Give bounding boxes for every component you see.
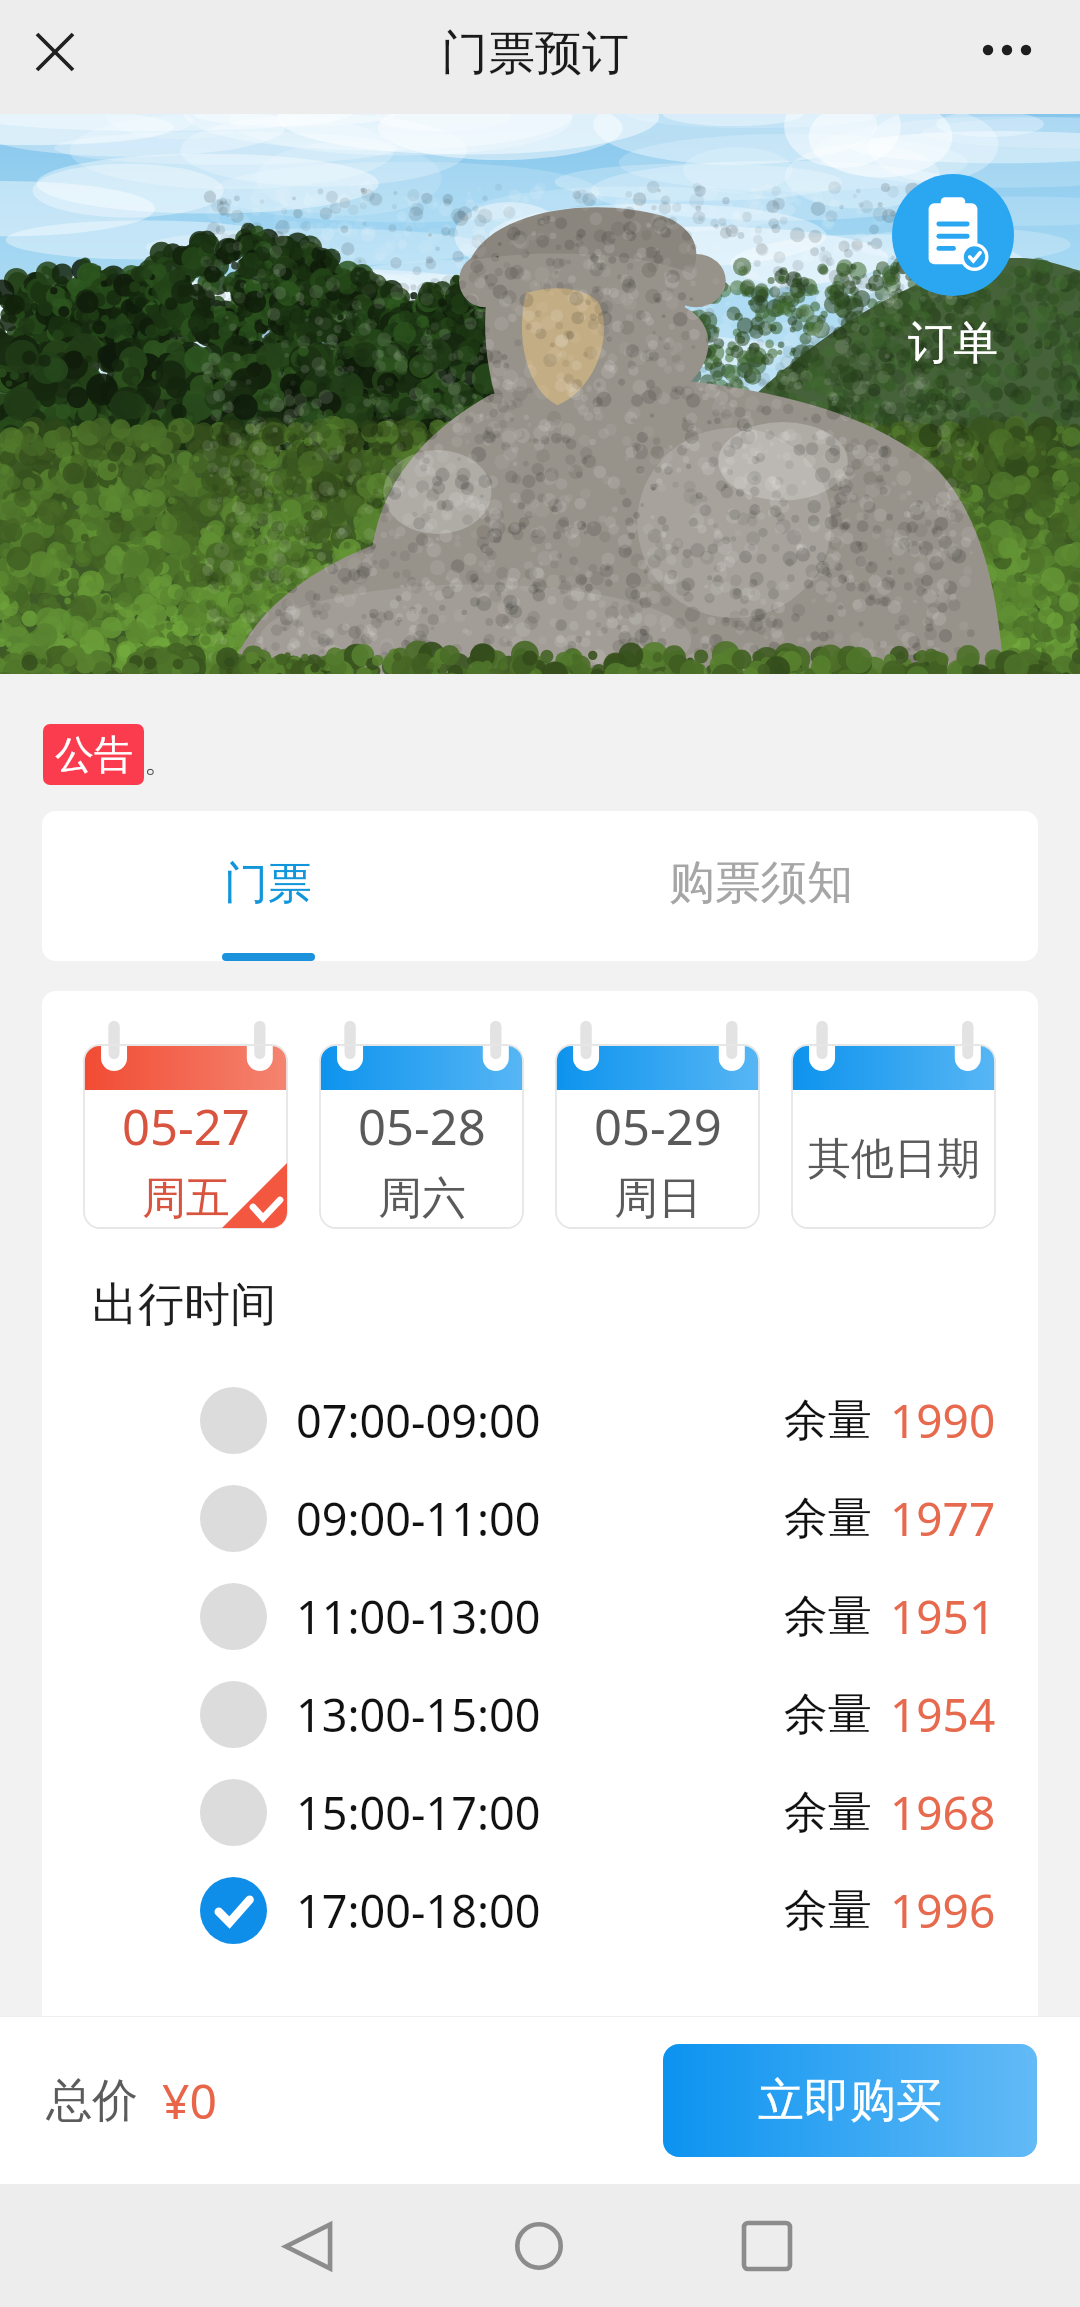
staticText: 周六	[378, 1171, 466, 1226]
staticText: 总价	[46, 2072, 138, 2130]
button[interactable]: Back	[253, 2191, 363, 2301]
staticText: 1951	[890, 1585, 996, 1648]
staticText: 05-28	[358, 1093, 486, 1160]
staticText: ¥0	[162, 2068, 217, 2133]
button[interactable]: 17:00-18:00	[42, 1861, 1038, 1959]
button[interactable]: 05-28	[320, 1021, 523, 1228]
button[interactable]: Home	[484, 2191, 594, 2301]
staticText: 05-29	[594, 1093, 722, 1160]
staticText: 1990	[890, 1389, 996, 1452]
staticText: 余量	[784, 1687, 872, 1742]
staticText: 余量	[784, 1393, 872, 1448]
staticText: 订单	[908, 315, 998, 372]
button[interactable]: 购票须知	[626, 811, 896, 961]
staticText: 门票预订	[441, 24, 629, 83]
staticText: 。	[144, 743, 174, 781]
staticText: 余量	[784, 1491, 872, 1546]
button[interactable]: Close	[20, 17, 90, 87]
button[interactable]: 07:00-09:00	[42, 1371, 1038, 1469]
button[interactable]: 门票	[133, 811, 403, 961]
staticText: 出行时间	[92, 1276, 276, 1334]
staticText: 公告	[55, 730, 133, 779]
button[interactable]: 公告	[43, 724, 144, 785]
button[interactable]: More options	[962, 15, 1052, 85]
button[interactable]: Recents	[712, 2191, 822, 2301]
button[interactable]: 09:00-11:00	[42, 1469, 1038, 1567]
staticText: 1996	[890, 1879, 996, 1942]
staticText: 17:00-18:00	[296, 1880, 541, 1941]
button[interactable]: 其他日期	[792, 1021, 995, 1228]
staticText: 购票须知	[669, 854, 853, 912]
staticText: 周五	[142, 1171, 230, 1226]
staticText: 11:00-13:00	[296, 1586, 541, 1647]
staticText: 1977	[890, 1487, 996, 1550]
staticText: 余量	[784, 1589, 872, 1644]
staticText: 余量	[784, 1883, 872, 1938]
staticText: 09:00-11:00	[296, 1488, 541, 1549]
button[interactable]: 05-27	[84, 1021, 287, 1228]
staticText: 立即购买	[758, 2072, 942, 2130]
staticText: 07:00-09:00	[296, 1390, 541, 1451]
button[interactable]: 13:00-15:00	[42, 1665, 1038, 1763]
button[interactable]: Orders	[892, 174, 1014, 372]
staticText: 周日	[614, 1171, 702, 1226]
button[interactable]: 11:00-13:00	[42, 1567, 1038, 1665]
button[interactable]: 立即购买	[663, 2044, 1037, 2157]
staticText: 余量	[784, 1785, 872, 1840]
staticText: 15:00-17:00	[296, 1782, 541, 1843]
staticText: 1968	[890, 1781, 996, 1844]
staticText: 05-27	[122, 1093, 250, 1160]
button[interactable]: 05-29	[556, 1021, 759, 1228]
staticText: 1954	[890, 1683, 996, 1746]
staticText: 门票	[224, 856, 312, 911]
staticText: 13:00-15:00	[296, 1684, 541, 1745]
staticText: 其他日期	[808, 1132, 980, 1186]
button[interactable]: 15:00-17:00	[42, 1763, 1038, 1861]
